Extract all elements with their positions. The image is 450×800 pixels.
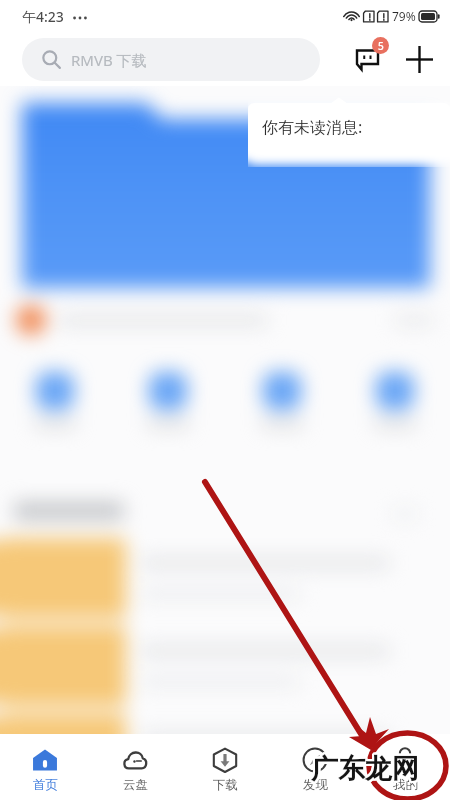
staticText: 广东龙网 [310,750,418,784]
staticText: 午4:23 [22,7,64,26]
staticText: 广东龙网 [312,754,420,788]
staticText: 广东龙网 [311,750,419,784]
staticText: 广东龙网 [311,754,419,788]
staticText: 广东龙网 [310,751,418,785]
staticText: 广东龙网 [310,753,418,787]
staticText: 下载 [213,777,238,793]
staticText: 广东龙网 [311,751,419,785]
staticText: 我的 [393,777,418,793]
button[interactable]: Add [402,42,436,76]
button[interactable]: 下载 [180,734,270,793]
staticText: 广东龙网 [310,754,418,788]
staticText: 广东龙网 [313,751,421,785]
staticText: 广东龙网 [311,753,419,787]
button[interactable]: 首页 [0,734,90,793]
staticText: 首页 [33,777,58,793]
staticText: 广东龙网 [311,752,419,786]
staticText: 广东龙网 [312,751,420,785]
button[interactable]: 发现 [270,734,360,793]
staticText: 广东龙网 [312,752,420,786]
button[interactable]: Messages [350,42,384,76]
staticText: 广东龙网 [312,750,420,784]
staticText: RMVB 下载 [71,50,147,70]
staticText: 广东龙网 [309,751,417,785]
staticText: 广东龙网 [313,753,421,787]
button[interactable]: 我的 [360,734,450,793]
staticText: 广东龙网 [312,753,420,787]
staticText: 5 [378,39,384,53]
staticText: 广东龙网 [309,753,417,787]
staticText: 云盘 [123,777,148,793]
staticText: 你有未读消息: [262,116,363,138]
staticText: 广东龙网 [310,752,418,786]
staticText: 79% [392,8,416,24]
staticText: 广东龙网 [309,752,417,786]
button[interactable]: RMVB 下载 [22,38,320,81]
staticText: 发现 [303,777,328,793]
button[interactable]: 云盘 [90,734,180,793]
staticText: 广东龙网 [313,752,421,786]
